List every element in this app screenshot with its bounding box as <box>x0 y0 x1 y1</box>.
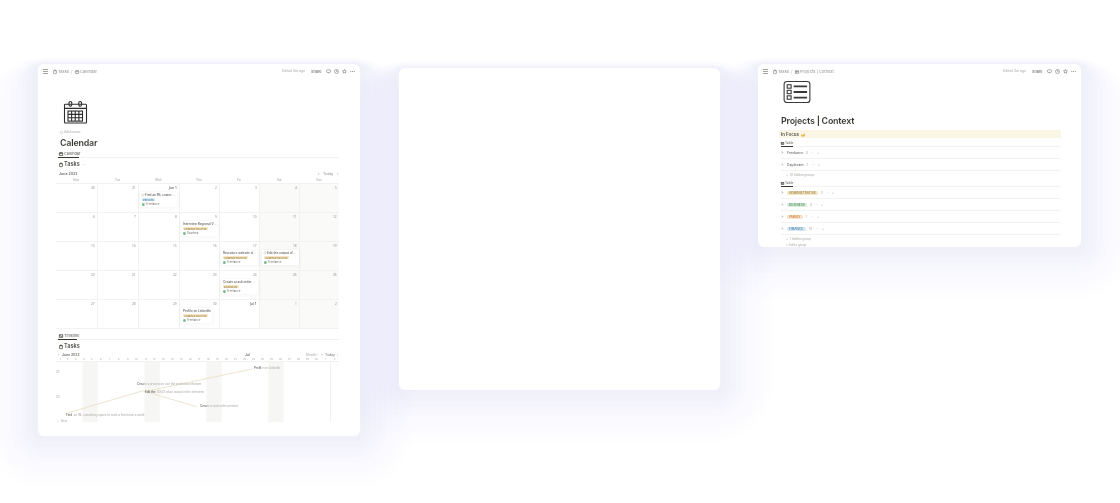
staticText: an IRL coworking space to work a few tim… <box>73 413 145 417</box>
button[interactable]: Comments <box>1047 69 1052 74</box>
button[interactable]: FAMILY <box>781 211 1061 222</box>
button[interactable]: 31 <box>97 184 138 212</box>
button[interactable]: 30 <box>56 184 97 212</box>
staticText: ‹ <box>58 353 60 357</box>
staticText: + <box>818 163 820 167</box>
button[interactable]: 26 <box>299 271 339 299</box>
button[interactable]: 10 <box>219 213 259 241</box>
staticText: 1 <box>325 358 326 361</box>
button[interactable]: Interview Regional Vi… <box>181 221 218 236</box>
staticText: 4 <box>295 186 297 190</box>
staticText: 13 <box>162 358 165 361</box>
button[interactable]: 21 <box>97 271 138 299</box>
staticText: 3 <box>806 151 808 155</box>
staticText: ··· <box>826 191 829 195</box>
button[interactable]: Calendar <box>59 151 81 156</box>
button[interactable]: 25 <box>259 271 299 299</box>
button[interactable]: Jul 1 <box>219 300 259 328</box>
staticText: PRIVATE <box>143 198 154 201</box>
staticText: 19 <box>216 358 219 361</box>
button[interactable]: 7 <box>97 213 138 241</box>
button[interactable]: FINANCE <box>781 223 1061 234</box>
button[interactable]: Tasks <box>53 69 98 74</box>
staticText: 28 <box>297 358 300 361</box>
button[interactable]: 19 <box>299 242 339 270</box>
staticText: BUSINESS <box>789 203 805 207</box>
button[interactable]: BUSINESS <box>781 199 1061 210</box>
staticText: 11 <box>293 215 297 219</box>
button[interactable]: Favorite <box>1063 69 1068 74</box>
button[interactable]: 17 <box>219 242 259 270</box>
button[interactable]: Add cover <box>60 130 81 134</box>
button[interactable]: Menu <box>763 69 768 74</box>
staticText: 21 <box>234 358 237 361</box>
button[interactable]: Favorite <box>342 69 347 74</box>
button[interactable]: 28 <box>97 300 138 328</box>
staticText: 30 <box>91 186 95 190</box>
staticText: 4 <box>810 203 812 207</box>
staticText: ‹ <box>318 171 320 176</box>
button[interactable]: Jun 1 <box>138 184 179 212</box>
button[interactable]: Comments <box>326 69 331 74</box>
button[interactable]: 15 <box>138 242 179 270</box>
button[interactable]: Updates <box>1055 69 1060 74</box>
staticText: 1 <box>807 163 809 167</box>
button[interactable]: 2 <box>179 184 219 212</box>
button[interactable]: Table <box>781 141 794 145</box>
button[interactable]: Share <box>1032 69 1043 74</box>
staticText: Find an IRL coworkin… <box>145 193 176 197</box>
staticText: 4 <box>83 358 85 361</box>
staticText: Projects | Context <box>781 115 855 126</box>
staticText: 5 <box>335 186 337 190</box>
button[interactable]: 16 <box>179 242 219 270</box>
button[interactable]: 20 <box>56 271 97 299</box>
button[interactable]: Menu <box>43 69 48 74</box>
button[interactable]: 22 <box>138 271 179 299</box>
button[interactable]: Revisita e website do W… <box>221 250 258 265</box>
button[interactable]: Create a task order pro… <box>221 279 258 294</box>
button[interactable]: Profile on LinkedIn <box>181 308 212 323</box>
button[interactable]: Timeline <box>59 333 80 338</box>
staticText: + <box>786 237 788 241</box>
button[interactable]: Daydream <box>781 159 1061 170</box>
button[interactable]: 29 <box>138 300 179 328</box>
staticText: Share <box>311 69 322 74</box>
button[interactable]: More options <box>1071 69 1076 74</box>
staticText: FAMILY <box>789 215 801 219</box>
staticText: Daydrea <box>187 231 199 235</box>
button[interactable]: ADMINISTRATIVE <box>781 187 1061 198</box>
button[interactable]: 30 <box>179 300 219 328</box>
staticText: ··· <box>83 163 87 167</box>
button[interactable]: More options <box>350 69 355 74</box>
button[interactable]: 3 <box>219 184 259 212</box>
button[interactable]: Updates <box>334 69 339 74</box>
button[interactable]: 9 <box>179 213 219 241</box>
button[interactable]: Tasks <box>773 69 834 74</box>
button[interactable]: 27 <box>56 300 97 328</box>
staticText: ADMINISTRATIVE <box>265 256 288 259</box>
button[interactable]: 14 <box>97 242 138 270</box>
button[interactable]: 8 <box>138 213 179 241</box>
button[interactable]: 12 <box>299 213 339 241</box>
button[interactable]: Table <box>781 181 794 185</box>
staticText: Calendar <box>60 137 98 148</box>
staticText: 17 <box>253 244 257 248</box>
staticText: 18 <box>293 244 297 248</box>
button[interactable]: 24 <box>219 271 259 299</box>
button[interactable]: Freelance <box>781 147 1061 158</box>
button[interactable]: 18 <box>259 242 299 270</box>
staticText: 15 <box>173 244 177 248</box>
button[interactable]: Share <box>311 69 322 74</box>
button[interactable]: Edit the output of an u… <box>262 250 299 265</box>
button[interactable]: Find an IRL coworkin… <box>140 192 177 207</box>
staticText: 9 <box>215 215 217 219</box>
staticText: Today <box>323 172 334 176</box>
button[interactable]: 23 <box>179 271 219 299</box>
